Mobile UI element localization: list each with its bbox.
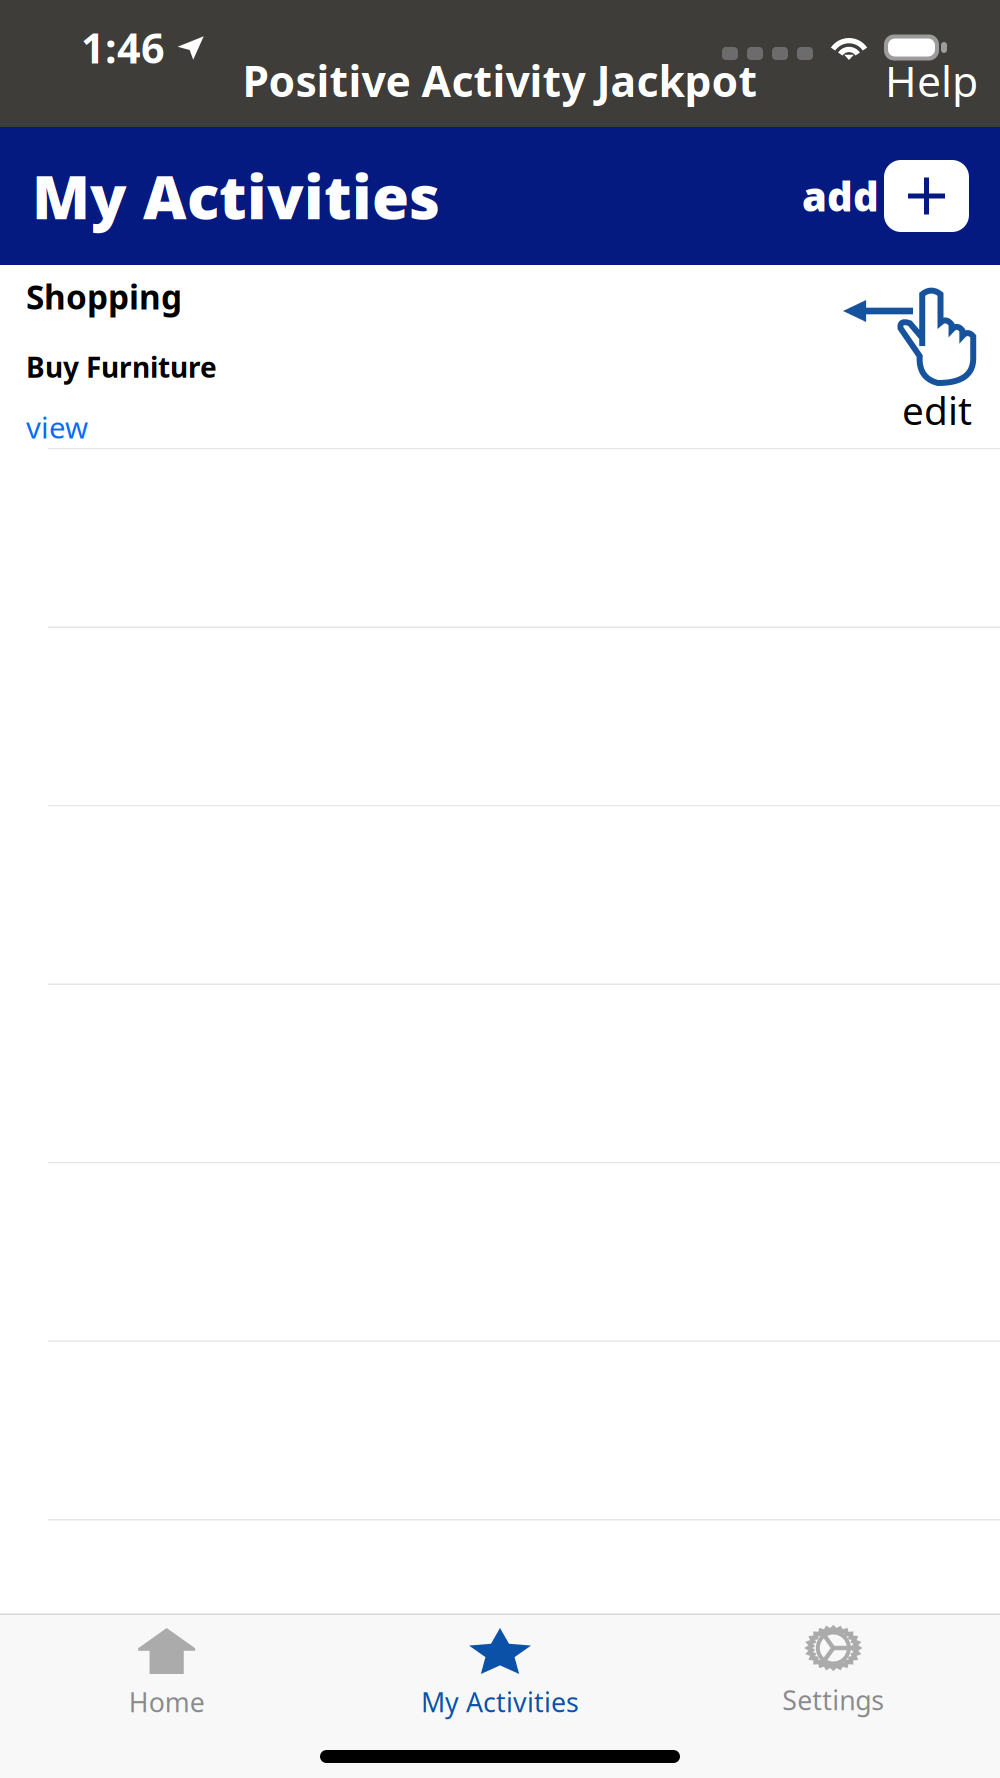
staticText: Shopping: [26, 274, 182, 319]
staticText: Positive Activity Jackpot: [242, 51, 757, 109]
staticText: Help: [885, 51, 978, 109]
button[interactable]: Swipe left to edit: [843, 265, 1000, 448]
staticText: edit: [902, 384, 972, 436]
button[interactable]: Help: [879, 47, 984, 113]
staticText: add: [802, 169, 879, 223]
staticText: My Activities: [421, 1684, 579, 1720]
button[interactable]: Settings: [667, 1615, 1000, 1730]
staticText: 1:46: [81, 19, 165, 76]
button[interactable]: add: [802, 160, 969, 232]
button[interactable]: Home: [0, 1615, 333, 1730]
staticText: My Activities: [32, 155, 440, 237]
button[interactable]: My Activities: [333, 1615, 667, 1730]
staticText: Buy Furniture: [26, 348, 217, 386]
staticText: view: [26, 407, 88, 447]
staticText: Settings: [782, 1682, 884, 1718]
button[interactable]: view: [26, 412, 88, 442]
staticText: Home: [129, 1684, 205, 1720]
